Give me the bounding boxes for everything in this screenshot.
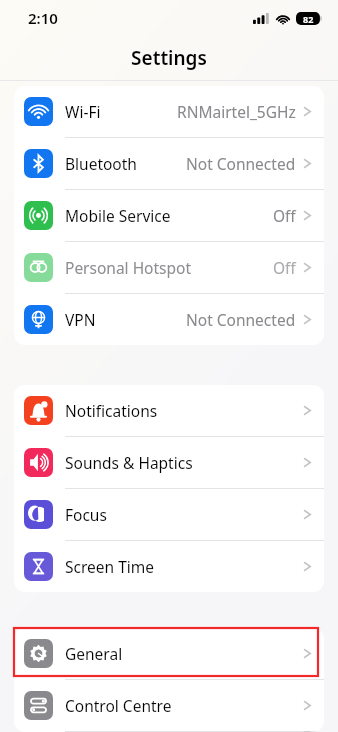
staticText: Notifications — [65, 400, 158, 421]
staticText: Settings — [131, 45, 207, 71]
button[interactable]: Personal Hotspot — [14, 242, 324, 294]
button[interactable]: VPN — [14, 294, 324, 345]
button[interactable]: Control Centre — [14, 680, 324, 732]
button[interactable]: Notifications — [14, 385, 324, 437]
button[interactable]: General — [14, 628, 324, 680]
staticText: Sounds & Haptics — [65, 452, 193, 473]
staticText: Focus — [65, 504, 107, 525]
staticText: Off — [273, 205, 296, 226]
staticText: Mobile Service — [65, 205, 171, 226]
button[interactable]: Focus — [14, 489, 324, 541]
staticText: Not Connected — [186, 309, 296, 330]
staticText: General — [65, 643, 123, 664]
button[interactable]: Screen Time — [14, 541, 324, 592]
button[interactable]: Mobile Service — [14, 190, 324, 242]
button[interactable]: Wi-Fi — [14, 86, 324, 138]
button[interactable]: Sounds & Haptics — [14, 437, 324, 489]
staticText: Screen Time — [65, 556, 154, 577]
staticText: VPN — [65, 309, 96, 330]
staticText: Wi-Fi — [65, 101, 101, 122]
staticText: Bluetooth — [65, 153, 137, 174]
staticText: 2:10 — [28, 8, 58, 28]
staticText: Off — [273, 257, 296, 278]
staticText: Control Centre — [65, 695, 172, 716]
staticText: Not Connected — [186, 153, 296, 174]
button[interactable]: Bluetooth — [14, 138, 324, 190]
staticText: Personal Hotspot — [65, 257, 192, 278]
staticText: 82 — [303, 13, 314, 25]
staticText: RNMairtel_5GHz — [177, 101, 296, 122]
